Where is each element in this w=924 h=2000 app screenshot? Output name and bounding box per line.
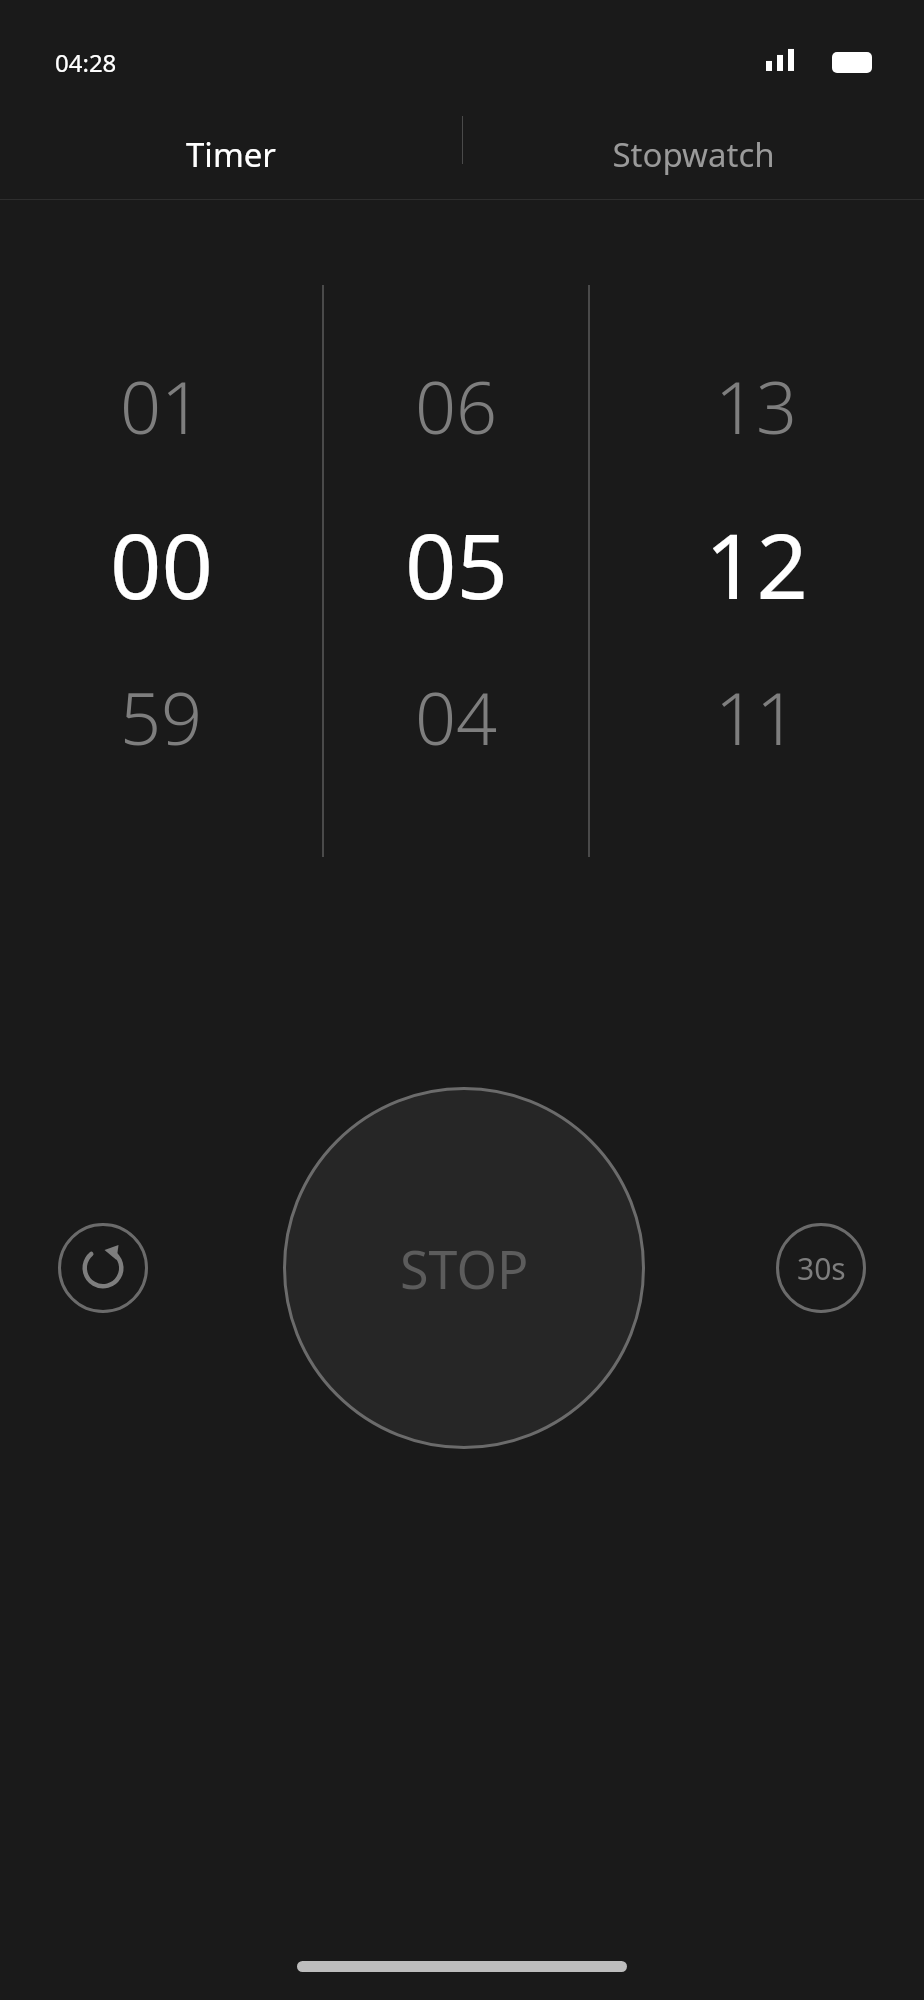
button[interactable]: Confirm timer bbox=[341, 1118, 591, 1326]
button[interactable]: STOP bbox=[283, 1087, 645, 1449]
staticText: Timer bbox=[186, 132, 276, 177]
staticText: STOP bbox=[400, 1233, 529, 1304]
staticText: 30s bbox=[797, 1248, 846, 1289]
staticText: 59 bbox=[120, 668, 203, 766]
button[interactable]: 06 bbox=[323, 285, 589, 857]
button[interactable]: Reset timer bbox=[58, 1223, 148, 1313]
staticText: 12 bbox=[705, 503, 808, 626]
staticText: 04 bbox=[415, 668, 498, 766]
staticText: 05 bbox=[405, 503, 508, 626]
button[interactable]: Timer bbox=[0, 108, 462, 200]
staticText: 11 bbox=[715, 668, 798, 766]
button[interactable]: 30s bbox=[776, 1223, 866, 1313]
button[interactable]: 01 bbox=[0, 285, 323, 857]
button[interactable]: 13 bbox=[589, 285, 924, 857]
staticText: 06 bbox=[415, 357, 498, 455]
staticText: 00 bbox=[110, 503, 213, 626]
button[interactable]: Stopwatch bbox=[462, 108, 924, 200]
staticText: 13 bbox=[715, 357, 798, 455]
staticText: Stopwatch bbox=[612, 132, 775, 177]
staticText: 01 bbox=[120, 357, 203, 455]
staticText: 04:28 bbox=[55, 46, 117, 79]
